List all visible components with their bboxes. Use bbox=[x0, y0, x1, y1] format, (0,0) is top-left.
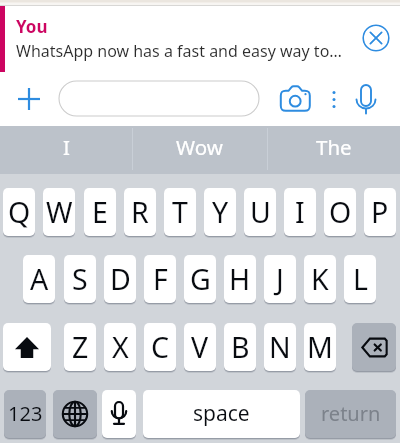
button[interactable]: T bbox=[164, 188, 196, 236]
staticText: J bbox=[276, 260, 284, 299]
button[interactable]: L bbox=[344, 255, 376, 303]
button[interactable]: Y bbox=[204, 188, 236, 236]
button[interactable]: G bbox=[184, 255, 216, 303]
staticText: C bbox=[151, 328, 170, 367]
button[interactable]: K bbox=[304, 255, 336, 303]
staticText: M bbox=[307, 328, 333, 367]
staticText: You bbox=[16, 15, 48, 38]
button[interactable]: O bbox=[324, 188, 356, 236]
button[interactable] bbox=[59, 81, 259, 116]
staticText: Q bbox=[8, 193, 31, 232]
button[interactable]: 123 bbox=[4, 390, 46, 438]
button[interactable]: P bbox=[364, 188, 396, 236]
staticText: WhatsApp now has a fast and easy way to… bbox=[16, 40, 342, 62]
button[interactable]: B bbox=[224, 323, 256, 371]
button[interactable]: The bbox=[267, 126, 400, 174]
button[interactable]: Switch keyboard bbox=[53, 390, 97, 438]
button[interactable]: U bbox=[244, 188, 276, 236]
button[interactable]: Voice message bbox=[355, 83, 377, 114]
button[interactable]: Z bbox=[64, 323, 96, 371]
button[interactable]: A bbox=[23, 255, 55, 303]
button[interactable]: N bbox=[264, 323, 296, 371]
button[interactable]: W bbox=[43, 188, 75, 236]
staticText: 123 bbox=[8, 400, 43, 427]
button[interactable]: Wow bbox=[133, 126, 266, 174]
staticText: I bbox=[295, 193, 305, 232]
button[interactable]: I bbox=[0, 126, 133, 174]
staticText: A bbox=[30, 260, 49, 299]
staticText: R bbox=[131, 193, 149, 232]
staticText: T bbox=[172, 193, 188, 232]
staticText: O bbox=[329, 193, 352, 232]
staticText: L bbox=[353, 260, 368, 299]
button[interactable]: D bbox=[104, 255, 136, 303]
staticText: I bbox=[63, 133, 70, 161]
staticText: D bbox=[110, 260, 131, 299]
button[interactable]: Q bbox=[3, 188, 35, 236]
button[interactable]: Attach bbox=[15, 85, 43, 113]
button[interactable]: J bbox=[264, 255, 296, 303]
button[interactable]: E bbox=[84, 188, 116, 236]
button[interactable]: return bbox=[305, 390, 396, 438]
staticText: E bbox=[92, 193, 108, 232]
staticText: space bbox=[193, 399, 250, 428]
staticText: B bbox=[231, 328, 250, 367]
staticText: H bbox=[229, 260, 251, 299]
button[interactable]: X bbox=[104, 323, 136, 371]
button[interactable]: R bbox=[124, 188, 156, 236]
staticText: N bbox=[269, 328, 291, 367]
button[interactable]: Shift bbox=[3, 323, 51, 371]
staticText: U bbox=[250, 193, 271, 232]
staticText: W bbox=[46, 193, 73, 232]
button[interactable]: F bbox=[144, 255, 176, 303]
button[interactable]: More options bbox=[328, 88, 340, 106]
button[interactable]: Camera bbox=[279, 84, 312, 112]
staticText: Y bbox=[212, 193, 229, 232]
button[interactable]: I bbox=[284, 188, 316, 236]
staticText: Wow bbox=[176, 133, 223, 161]
button[interactable]: Backspace bbox=[352, 323, 396, 371]
button[interactable]: V bbox=[184, 323, 216, 371]
button[interactable]: S bbox=[64, 255, 96, 303]
staticText: V bbox=[191, 328, 209, 367]
staticText: Z bbox=[72, 328, 89, 367]
staticText: G bbox=[190, 260, 211, 299]
staticText: X bbox=[112, 328, 129, 367]
staticText: return bbox=[321, 400, 381, 427]
staticText: S bbox=[72, 260, 88, 299]
staticText: The bbox=[316, 133, 352, 161]
staticText: F bbox=[153, 260, 168, 299]
button[interactable]: H bbox=[224, 255, 256, 303]
button[interactable]: Dictation bbox=[102, 390, 136, 438]
button[interactable]: M bbox=[304, 323, 336, 371]
button[interactable]: Close reply bbox=[362, 24, 390, 52]
staticText: P bbox=[371, 193, 389, 232]
button[interactable]: space bbox=[143, 390, 300, 438]
staticText: K bbox=[311, 260, 329, 299]
button[interactable]: C bbox=[144, 323, 176, 371]
